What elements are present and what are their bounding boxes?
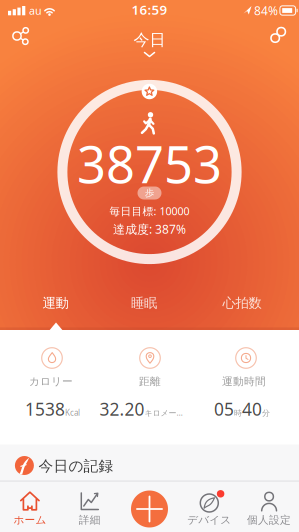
- staticText: 運動時間: [222, 375, 266, 388]
- staticText: 38753: [77, 130, 222, 197]
- staticText: キロメー…: [144, 407, 182, 418]
- button[interactable]: 今日: [124, 28, 174, 60]
- staticText: 16:59: [131, 1, 167, 18]
- staticText: 分: [262, 408, 270, 418]
- button[interactable]: ホーム: [0, 481, 60, 532]
- staticText: 1538: [25, 397, 65, 420]
- staticText: 05: [214, 397, 234, 420]
- staticText: ホーム: [13, 513, 46, 526]
- button[interactable]: 詳細: [60, 481, 120, 532]
- button[interactable]: Share: [6, 21, 36, 51]
- staticText: 距離: [139, 375, 161, 388]
- button[interactable]: 心拍数: [197, 289, 287, 317]
- button[interactable]: 運動: [10, 289, 100, 317]
- staticText: 時: [234, 408, 242, 418]
- staticText: 睡眠: [131, 295, 157, 311]
- button[interactable]: Link device: [263, 19, 293, 49]
- staticText: 心拍数: [222, 295, 261, 311]
- button[interactable]: 睡眠: [99, 289, 189, 317]
- staticText: 運動: [42, 295, 68, 311]
- staticText: 達成度: 387%: [113, 221, 186, 237]
- staticText: 毎日目標: 10000: [109, 204, 189, 218]
- staticText: Kcal: [65, 407, 80, 418]
- staticText: au: [29, 3, 42, 18]
- staticText: カロリー: [29, 375, 73, 388]
- staticText: 84%: [254, 2, 278, 18]
- staticText: デバイス: [187, 513, 231, 526]
- staticText: 今日の記録: [38, 457, 113, 475]
- button[interactable]: 今日の記録: [0, 444, 299, 481]
- button[interactable]: 個人設定: [239, 481, 299, 532]
- button[interactable]: Add record: [131, 490, 168, 527]
- staticText: 個人設定: [247, 513, 291, 526]
- staticText: 今日: [133, 30, 165, 50]
- button[interactable]: デバイス: [179, 481, 239, 532]
- staticText: 40: [242, 397, 262, 420]
- staticText: 詳細: [79, 513, 101, 526]
- staticText: 歩: [145, 187, 154, 199]
- staticText: 32.20: [99, 397, 144, 420]
